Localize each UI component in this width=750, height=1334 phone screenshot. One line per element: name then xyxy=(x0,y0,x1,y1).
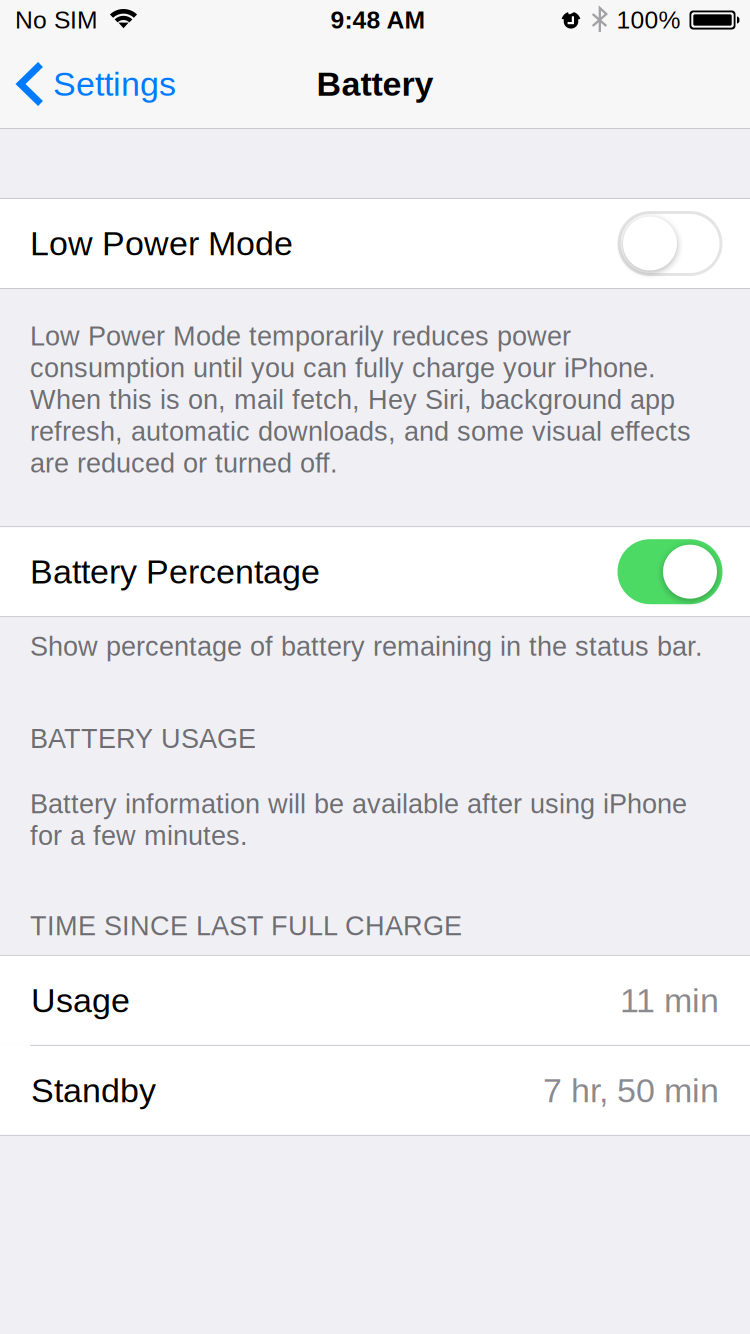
staticText: Battery xyxy=(316,65,433,103)
staticText: 100% xyxy=(616,6,680,34)
button[interactable]: Low Power Mode xyxy=(0,199,750,288)
staticText: 11 min xyxy=(620,981,719,1019)
staticText: 9:48 AM xyxy=(330,6,425,34)
button[interactable]: Battery Percentage xyxy=(0,527,750,616)
staticText: Battery information will be available af… xyxy=(30,789,687,851)
staticText: TIME SINCE LAST FULL CHARGE xyxy=(30,911,462,941)
staticText: Usage xyxy=(31,981,130,1019)
staticText: BATTERY USAGE xyxy=(30,723,256,754)
button[interactable]: Back to Settings xyxy=(0,40,190,128)
staticText: Low Power Mode temporarily reduces power… xyxy=(30,321,691,478)
staticText: Low Power Mode xyxy=(30,224,293,262)
staticText: No SIM xyxy=(15,6,98,34)
staticText: Standby xyxy=(31,1071,156,1109)
staticText: 7 hr, 50 min xyxy=(543,1071,719,1109)
staticText: Battery Percentage xyxy=(30,553,320,591)
staticText: Show percentage of battery remaining in … xyxy=(30,631,703,661)
staticText: Settings xyxy=(53,65,176,103)
